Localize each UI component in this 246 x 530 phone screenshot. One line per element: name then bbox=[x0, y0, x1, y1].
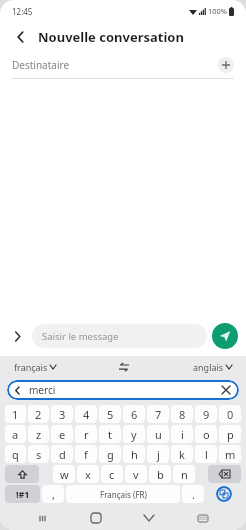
staticText: m bbox=[225, 447, 236, 462]
button[interactable]: t bbox=[99, 425, 121, 443]
staticText: 9 bbox=[203, 407, 210, 422]
button[interactable]: w bbox=[53, 465, 75, 483]
button[interactable]: Add recipient bbox=[218, 57, 234, 73]
button[interactable]: Backspace bbox=[208, 465, 241, 483]
staticText: j bbox=[157, 447, 160, 462]
button[interactable]: r bbox=[75, 425, 97, 443]
button[interactable]: !#1 bbox=[5, 485, 40, 503]
button[interactable]: merci bbox=[7, 380, 239, 400]
button[interactable]: Recents bbox=[16, 506, 69, 530]
button[interactable]: m bbox=[219, 445, 241, 463]
staticText: v bbox=[133, 467, 139, 482]
button[interactable]: Home bbox=[69, 506, 122, 530]
staticText: anglais bbox=[193, 361, 224, 373]
button[interactable]: Translate bbox=[206, 485, 241, 503]
staticText: , bbox=[52, 487, 55, 502]
button[interactable]: q bbox=[5, 445, 26, 463]
button[interactable]: 4 bbox=[75, 405, 97, 423]
button[interactable]: k bbox=[171, 445, 193, 463]
button[interactable]: b bbox=[149, 465, 171, 483]
button[interactable]: o bbox=[195, 425, 217, 443]
button[interactable]: a bbox=[5, 425, 26, 443]
staticText: u bbox=[155, 427, 162, 442]
button[interactable]: 6 bbox=[123, 405, 145, 423]
staticText: x bbox=[85, 467, 91, 482]
staticText: 4 bbox=[83, 407, 90, 422]
button[interactable]: 5 bbox=[99, 405, 121, 423]
staticText: 7 bbox=[155, 407, 162, 422]
staticText: Destinataire bbox=[12, 58, 70, 72]
staticText: p bbox=[227, 427, 234, 442]
button[interactable]: e bbox=[51, 425, 73, 443]
button[interactable]: v bbox=[125, 465, 147, 483]
button[interactable]: h bbox=[123, 445, 145, 463]
staticText: c bbox=[109, 467, 115, 482]
staticText: d bbox=[59, 447, 66, 462]
staticText: 2 bbox=[35, 407, 42, 422]
button[interactable]: z bbox=[28, 425, 49, 443]
staticText: z bbox=[36, 427, 42, 442]
button[interactable]: Swap languages bbox=[116, 359, 132, 375]
staticText: i bbox=[181, 427, 184, 442]
button[interactable]: 2 bbox=[28, 405, 49, 423]
staticText: 1 bbox=[12, 407, 19, 422]
button[interactable]: 3 bbox=[51, 405, 73, 423]
button[interactable]: p bbox=[219, 425, 241, 443]
button[interactable]: . bbox=[182, 485, 204, 503]
button[interactable]: anglais bbox=[193, 361, 232, 373]
staticText: o bbox=[203, 427, 210, 442]
staticText: s bbox=[36, 447, 42, 462]
button[interactable]: Clear bbox=[220, 384, 232, 396]
button[interactable]: Saisir le message bbox=[32, 324, 207, 348]
staticText: w bbox=[60, 467, 69, 482]
staticText: g bbox=[107, 447, 114, 462]
button[interactable]: c bbox=[101, 465, 123, 483]
button[interactable]: Expand bbox=[8, 327, 26, 345]
staticText: q bbox=[12, 447, 19, 462]
button[interactable]: j bbox=[147, 445, 169, 463]
button[interactable]: s bbox=[28, 445, 49, 463]
button[interactable]: 1 bbox=[5, 405, 26, 423]
staticText: 8 bbox=[179, 407, 186, 422]
button[interactable]: Destinataire bbox=[12, 52, 234, 78]
button[interactable]: n bbox=[173, 465, 195, 483]
staticText: t bbox=[108, 427, 112, 442]
staticText: y bbox=[131, 427, 137, 442]
staticText: Français (FR) bbox=[100, 489, 147, 500]
button[interactable]: d bbox=[51, 445, 73, 463]
staticText: 100% bbox=[208, 6, 228, 16]
button[interactable]: i bbox=[171, 425, 193, 443]
staticText: b bbox=[157, 467, 164, 482]
button[interactable]: l bbox=[195, 445, 217, 463]
button[interactable]: Back bbox=[10, 26, 32, 48]
button[interactable]: 0 bbox=[219, 405, 241, 423]
button[interactable]: français bbox=[14, 361, 56, 373]
button[interactable]: y bbox=[123, 425, 145, 443]
staticText: 5 bbox=[107, 407, 114, 422]
staticText: 3 bbox=[59, 407, 66, 422]
staticText: merci bbox=[29, 383, 56, 397]
staticText: e bbox=[59, 427, 66, 442]
button[interactable]: 9 bbox=[195, 405, 217, 423]
button[interactable]: , bbox=[42, 485, 64, 503]
staticText: r bbox=[84, 427, 89, 442]
button[interactable]: Français (FR) bbox=[66, 485, 180, 503]
staticText: Saisir le message bbox=[42, 330, 119, 343]
button[interactable]: Keyboard layout bbox=[176, 506, 230, 530]
button[interactable]: f bbox=[75, 445, 97, 463]
staticText: 6 bbox=[131, 407, 138, 422]
button[interactable]: u bbox=[147, 425, 169, 443]
button[interactable]: Hide keyboard bbox=[122, 506, 176, 530]
staticText: n bbox=[181, 467, 188, 482]
staticText: f bbox=[84, 447, 88, 462]
staticText: h bbox=[131, 447, 138, 462]
button[interactable]: x bbox=[77, 465, 99, 483]
button[interactable]: 7 bbox=[147, 405, 169, 423]
staticText: . bbox=[192, 487, 195, 502]
staticText: français bbox=[14, 361, 48, 373]
button[interactable]: Shift bbox=[5, 465, 39, 483]
button[interactable]: 8 bbox=[171, 405, 193, 423]
staticText: 0 bbox=[227, 407, 234, 422]
button[interactable]: Send bbox=[212, 323, 238, 349]
button[interactable]: g bbox=[99, 445, 121, 463]
